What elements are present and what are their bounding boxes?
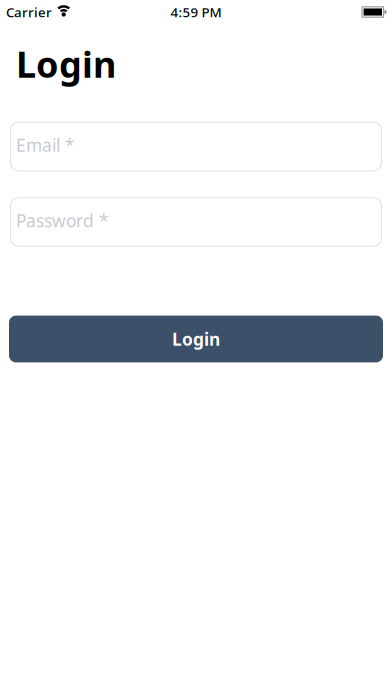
staticText: Login [172, 327, 220, 350]
staticText: Email * [16, 133, 75, 156]
staticText: Login [16, 40, 116, 88]
button[interactable]: Password * [10, 197, 382, 247]
staticText: Password * [16, 209, 109, 232]
button[interactable]: Email * [10, 122, 382, 171]
button[interactable]: Login [9, 316, 383, 362]
staticText: Carrier [6, 3, 52, 21]
staticText: 4:59 PM [170, 3, 221, 21]
